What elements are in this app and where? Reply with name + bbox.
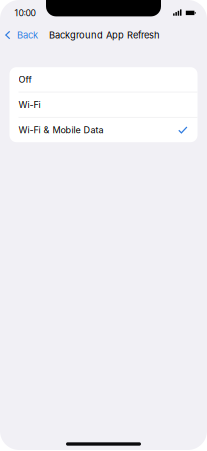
- button[interactable]: Wi-Fi: [9, 92, 197, 117]
- staticText: 10:00: [14, 8, 35, 18]
- staticText: Off: [18, 74, 31, 85]
- button[interactable]: Wi-Fi & Mobile Data: [9, 118, 197, 142]
- button[interactable]: Off: [9, 67, 197, 92]
- staticText: Wi-Fi: [18, 99, 40, 110]
- staticText: Wi-Fi & Mobile Data: [18, 124, 103, 135]
- button[interactable]: Back: [0, 26, 42, 44]
- staticText: Back: [17, 29, 38, 41]
- staticText: Background App Refresh: [49, 29, 160, 41]
